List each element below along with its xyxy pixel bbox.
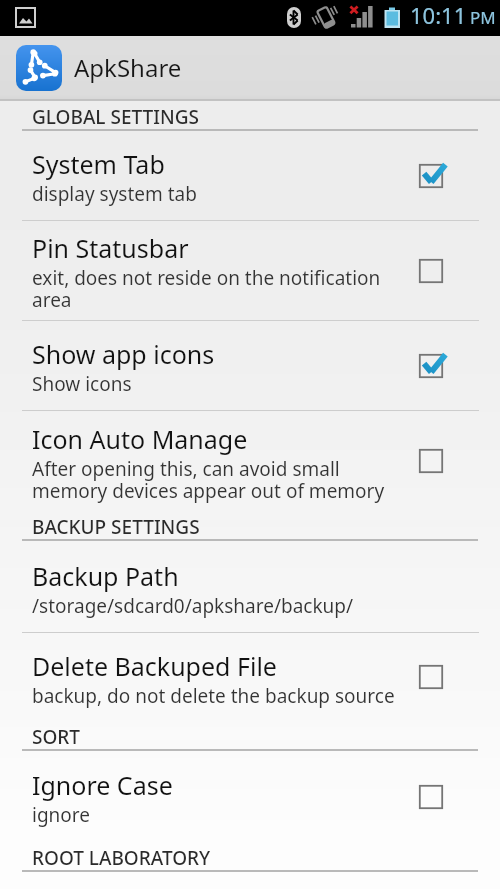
button[interactable]: Pin Statusbar [0, 221, 500, 321]
staticText: GLOBAL SETTINGS [32, 104, 199, 130]
button[interactable]: Toggle setting [414, 660, 448, 694]
staticText: Backup Path [32, 559, 179, 593]
staticText: After opening this, can avoid small memo… [32, 456, 392, 504]
button[interactable]: Toggle setting [414, 780, 448, 814]
staticText: ApkShare [74, 51, 182, 84]
staticText: Show icons [32, 371, 132, 397]
staticText: Pin Statusbar [32, 231, 189, 265]
button[interactable]: System Tab [0, 131, 500, 221]
staticText: exit, does not reside on the notificatio… [32, 265, 384, 313]
staticText: Icon Auto Manage [32, 422, 248, 456]
button[interactable]: Delete Backuped File [0, 633, 500, 721]
staticText: ROOT LABORATORY [32, 845, 211, 871]
staticText: 10:11 [410, 0, 467, 30]
button[interactable]: Toggle setting [414, 349, 448, 383]
button[interactable]: Show app icons [0, 321, 500, 411]
staticText: Show app icons [32, 337, 215, 371]
staticText: System Tab [32, 147, 165, 181]
staticText: /storage/sdcard0/apkshare/backup/ [32, 593, 354, 619]
button[interactable]: Toggle setting [414, 254, 448, 288]
button[interactable]: Toggle setting [414, 159, 448, 193]
staticText: Ignore Case [32, 768, 173, 802]
button[interactable]: Ignore Case [0, 751, 500, 842]
button[interactable]: Toggle setting [414, 444, 448, 478]
staticText: SORT [32, 724, 81, 750]
staticText: ignore [32, 802, 91, 828]
button[interactable]: Icon Auto Manage [0, 411, 500, 511]
staticText: Delete Backuped File [32, 649, 277, 683]
staticText: PM [470, 6, 496, 29]
staticText: backup, do not delete the backup source [32, 683, 395, 709]
staticText: BACKUP SETTINGS [32, 514, 200, 540]
staticText: display system tab [32, 181, 197, 207]
button[interactable]: Backup Path [0, 541, 500, 633]
